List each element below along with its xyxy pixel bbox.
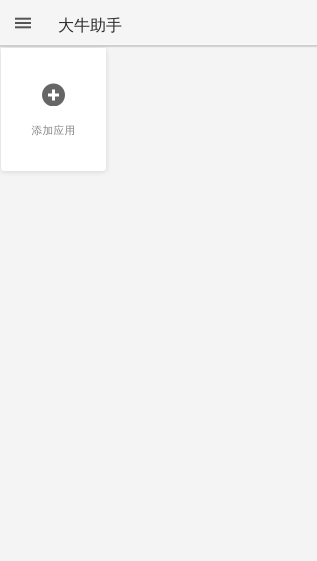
button[interactable]: 添加应用	[1, 48, 106, 171]
button[interactable]: Menu	[0, 0, 58, 44]
staticText: 大牛助手	[58, 16, 122, 35]
staticText: 添加应用	[31, 124, 75, 137]
